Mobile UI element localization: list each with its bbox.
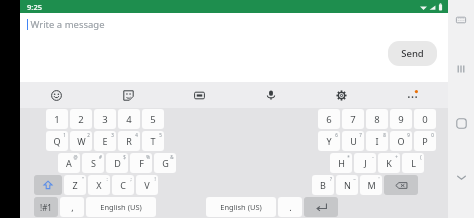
button[interactable]: Home [449, 111, 473, 135]
button[interactable]: 2 [70, 109, 92, 129]
button[interactable]: 9 [390, 109, 412, 129]
button[interactable]: E [94, 131, 116, 151]
button[interactable]: L [402, 153, 424, 173]
button[interactable]: Voice input [235, 82, 306, 108]
staticText: 9:25 [27, 2, 42, 12]
button[interactable]: V [136, 175, 158, 195]
staticText: K [386, 157, 392, 169]
button[interactable]: Hide keyboard [450, 9, 472, 31]
button[interactable]: J [354, 153, 376, 173]
staticText: 0 [422, 113, 428, 126]
staticText: * [347, 154, 350, 160]
staticText: A [66, 157, 72, 169]
button[interactable]: 8 [366, 109, 388, 129]
button[interactable]: H [330, 153, 352, 173]
button[interactable]: 0 [414, 109, 436, 129]
staticText: , [71, 201, 74, 213]
button[interactable]: O [390, 131, 412, 151]
button[interactable]: U [342, 131, 364, 151]
button[interactable]: Settings [306, 82, 377, 108]
button[interactable]: Backspace [384, 175, 418, 195]
button[interactable]: 3 [94, 109, 116, 129]
staticText: 1 [54, 113, 60, 126]
button[interactable]: Enter [304, 197, 338, 217]
staticText: 8 [374, 113, 380, 126]
staticText: L [411, 157, 416, 169]
staticText: 6 [335, 132, 338, 138]
staticText: ! [154, 176, 156, 182]
button[interactable]: Recent apps [449, 57, 473, 81]
button[interactable]: English (US) [86, 197, 156, 217]
button[interactable]: Shift [34, 175, 62, 195]
button[interactable]: I [366, 131, 388, 151]
staticText: E [102, 135, 108, 147]
button[interactable]: 4 [118, 109, 140, 129]
staticText: Write a message [30, 18, 105, 31]
staticText: - [372, 154, 374, 160]
staticText: 5 [150, 113, 156, 126]
staticText: + [395, 154, 398, 160]
staticText: Q [53, 135, 61, 147]
button[interactable]: R [118, 131, 140, 151]
button[interactable]: Send [388, 41, 437, 66]
button[interactable]: , [60, 197, 84, 217]
button[interactable]: Emoji [20, 82, 92, 108]
button[interactable]: S [82, 153, 104, 173]
staticText: . [289, 201, 292, 213]
button[interactable]: GIF [164, 82, 235, 108]
button[interactable]: B [312, 175, 334, 195]
button[interactable]: 1 [46, 109, 68, 129]
staticText: English (US) [220, 202, 262, 212]
staticText: 2 [87, 132, 90, 138]
staticText: 8 [383, 132, 386, 138]
staticText: Send [401, 47, 424, 60]
staticText: & [170, 154, 174, 160]
button[interactable]: Z [64, 175, 86, 195]
button[interactable]: C [112, 175, 134, 195]
staticText: R [126, 135, 132, 147]
staticText: 9 [407, 132, 410, 138]
staticText: B [320, 179, 326, 191]
button[interactable]: 5 [142, 109, 164, 129]
button[interactable]: W [70, 131, 92, 151]
button[interactable]: F [130, 153, 152, 173]
button[interactable]: P [414, 131, 436, 151]
staticText: 9 [398, 113, 404, 126]
staticText: ( [420, 154, 422, 160]
staticText: $ [123, 154, 126, 160]
staticText: G [162, 157, 169, 169]
button[interactable]: Stickers [92, 82, 164, 108]
staticText: 4 [135, 132, 138, 138]
staticText: Y [326, 135, 332, 147]
staticText: V [144, 179, 150, 191]
staticText: W [77, 135, 86, 147]
staticText: 4 [126, 113, 132, 126]
button[interactable]: T [142, 131, 164, 151]
button[interactable]: Y [318, 131, 340, 151]
button[interactable]: !#1 [34, 197, 58, 217]
button[interactable]: Back [449, 165, 473, 189]
button[interactable]: X [88, 175, 110, 195]
button[interactable]: English (US) [206, 197, 276, 217]
staticText: 0 [431, 132, 434, 138]
staticText: H [338, 157, 345, 169]
staticText: 5 [159, 132, 162, 138]
button[interactable]: A [58, 153, 80, 173]
button[interactable]: M [360, 175, 382, 195]
button[interactable]: Q [46, 131, 68, 151]
staticText: U [350, 135, 357, 147]
staticText: # [99, 154, 102, 160]
button[interactable]: . [278, 197, 302, 217]
button[interactable]: G [154, 153, 176, 173]
staticText: 2 [78, 113, 84, 126]
staticText: 7 [359, 132, 362, 138]
staticText: C [120, 179, 126, 191]
button[interactable]: 7 [342, 109, 364, 129]
staticText: O [397, 135, 405, 147]
button[interactable]: More options [377, 82, 448, 108]
staticText: ? [330, 176, 332, 182]
button[interactable]: 6 [318, 109, 340, 129]
button[interactable]: K [378, 153, 400, 173]
button[interactable]: N [336, 175, 358, 195]
button[interactable]: D [106, 153, 128, 173]
